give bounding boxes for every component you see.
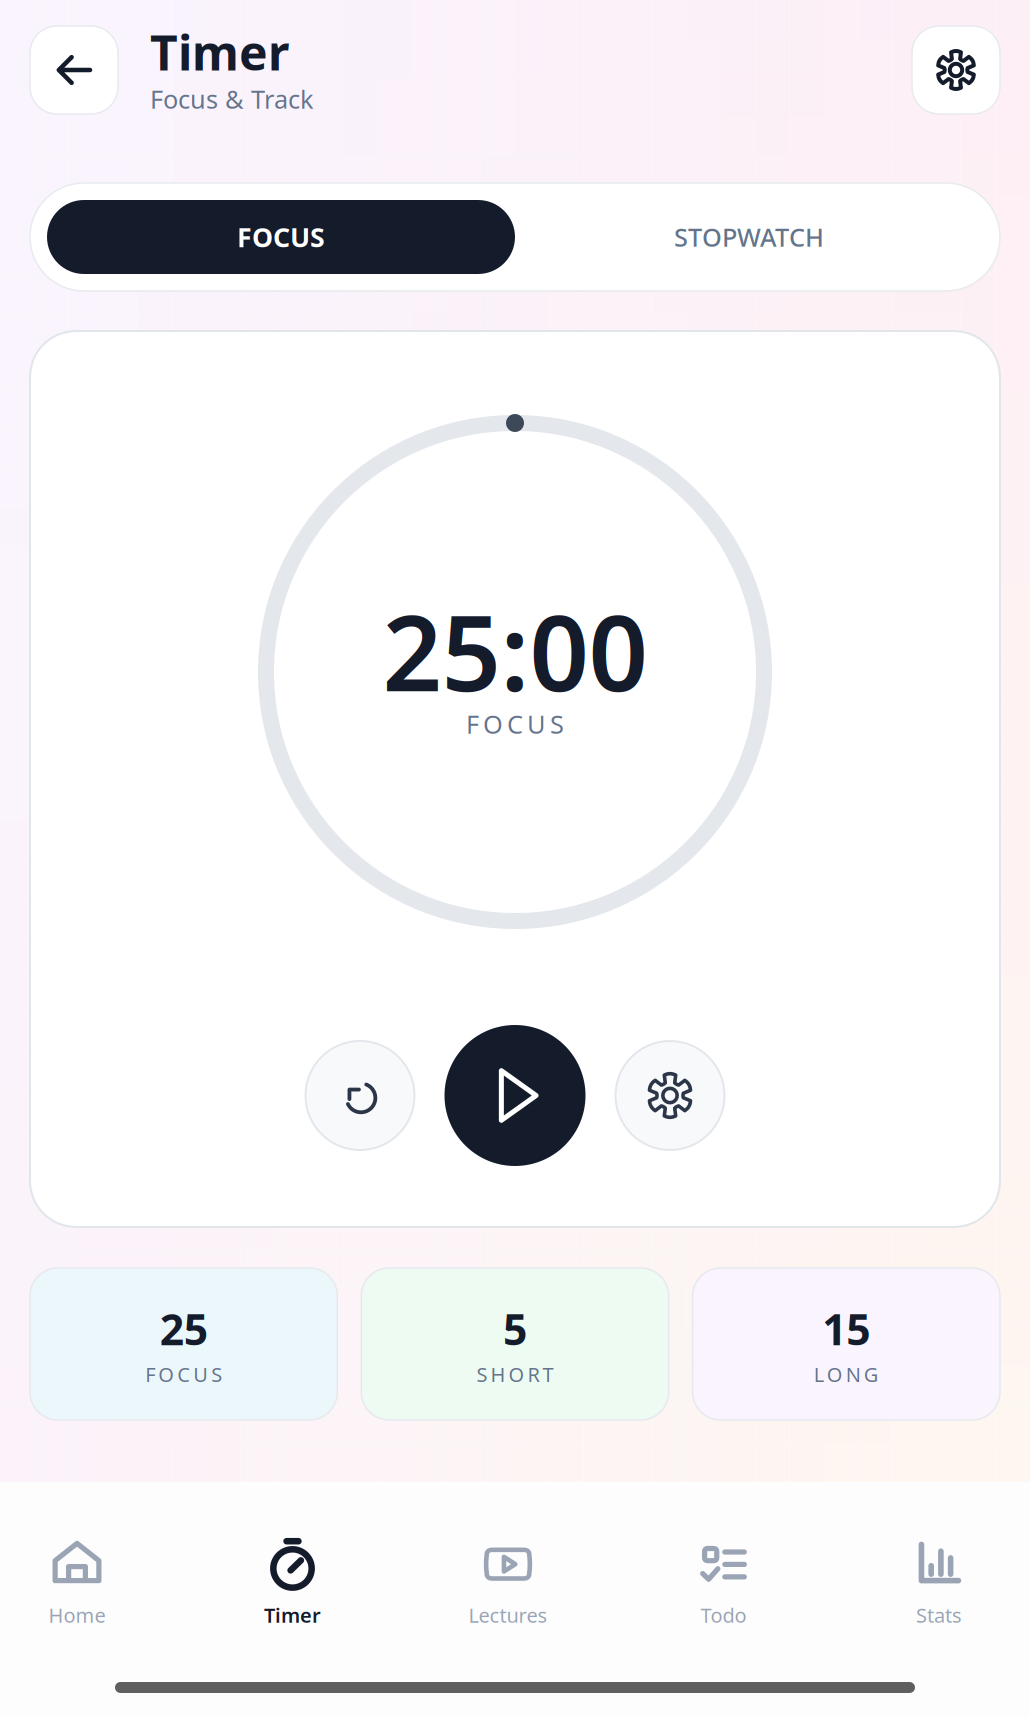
staticText: 15: [822, 1300, 870, 1357]
button[interactable]: Back: [30, 26, 118, 114]
button[interactable]: Timer: [215, 1535, 369, 1625]
staticText: 25:00: [382, 582, 647, 720]
button[interactable]: FOCUS: [47, 200, 515, 274]
button[interactable]: Todo: [646, 1535, 800, 1625]
staticText: F O C U S: [145, 1361, 222, 1388]
staticText: Lectures: [468, 1602, 547, 1628]
staticText: STOPWATCH: [674, 220, 824, 254]
button[interactable]: Home: [0, 1535, 154, 1625]
staticText: Todo: [700, 1602, 746, 1628]
button[interactable]: Lectures: [431, 1535, 585, 1625]
staticText: 25: [160, 1300, 208, 1357]
staticText: F O C U S: [466, 707, 564, 741]
button[interactable]: Settings: [912, 26, 1000, 114]
staticText: Home: [48, 1602, 105, 1628]
staticText: 5: [503, 1300, 527, 1357]
button[interactable]: Reset: [305, 1041, 414, 1150]
button[interactable]: 15: [693, 1268, 1000, 1420]
staticText: Stats: [916, 1602, 962, 1628]
button[interactable]: STOPWATCH: [515, 200, 983, 274]
staticText: Timer: [150, 20, 289, 84]
staticText: FOCUS: [237, 219, 325, 255]
button[interactable]: 25: [30, 1268, 337, 1420]
staticText: L O N G: [814, 1361, 879, 1388]
button[interactable]: 5: [361, 1268, 669, 1420]
button[interactable]: Timer settings: [615, 1041, 724, 1150]
button[interactable]: Start: [444, 1025, 585, 1166]
staticText: Focus & Track: [150, 82, 314, 116]
staticText: S H O R T: [476, 1361, 553, 1388]
staticText: Timer: [264, 1602, 321, 1628]
button[interactable]: Stats: [862, 1535, 1016, 1625]
